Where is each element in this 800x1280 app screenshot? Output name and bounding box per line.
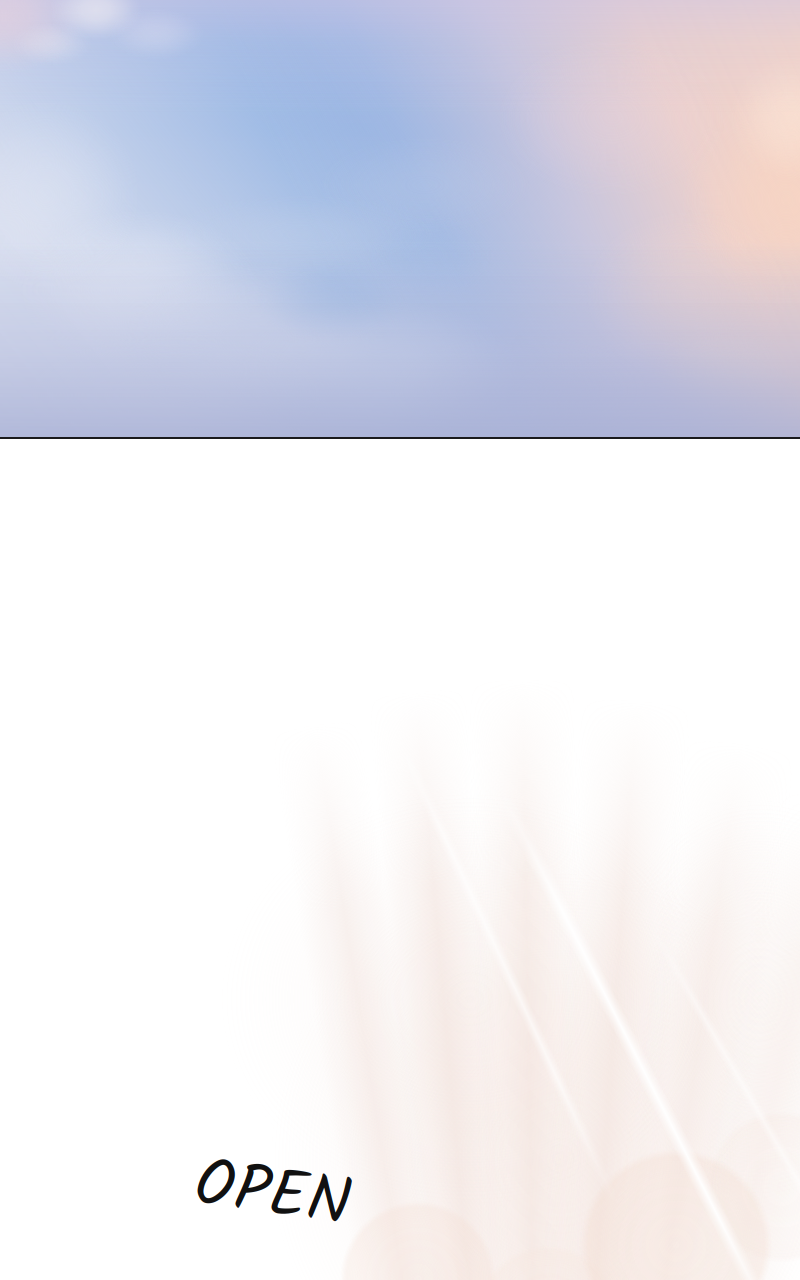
staticText: OPEN [194, 1144, 351, 1248]
